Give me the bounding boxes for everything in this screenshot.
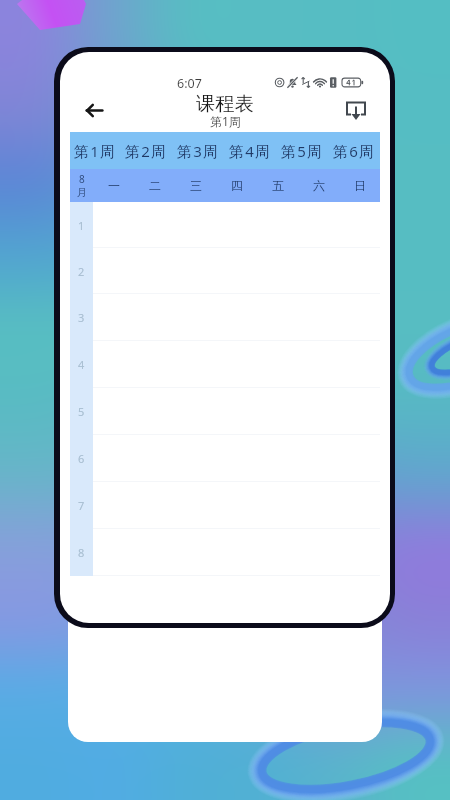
staticText: 第5周	[281, 141, 324, 161]
staticText: 四	[231, 178, 243, 193]
staticText: 8	[79, 172, 85, 186]
button[interactable]: Back	[79, 95, 110, 126]
staticText: 课程表	[196, 92, 255, 116]
staticText: 二	[149, 178, 161, 193]
staticText: 第4周	[229, 141, 272, 161]
staticText: 5	[78, 404, 85, 419]
button[interactable]: 第2周	[121, 132, 172, 169]
button[interactable]: Import schedule	[343, 98, 369, 124]
staticText: 第3周	[177, 141, 220, 161]
button[interactable]: 第4周	[224, 132, 276, 169]
staticText: 五	[272, 178, 284, 193]
staticText: 1	[78, 218, 85, 233]
staticText: 6	[78, 451, 85, 466]
staticText: 一	[108, 178, 120, 193]
staticText: 六	[313, 178, 325, 193]
staticText: 4	[78, 357, 85, 372]
button[interactable]: 第1周	[70, 132, 121, 169]
button[interactable]: 六	[298, 169, 339, 202]
button[interactable]: 第6周	[328, 132, 380, 169]
staticText: 第1周	[210, 113, 241, 129]
staticText: 第6周	[333, 141, 376, 161]
staticText: 第1周	[74, 141, 117, 161]
staticText: 8	[78, 545, 85, 560]
staticText: 6:07	[177, 75, 202, 92]
staticText: 第2周	[125, 141, 168, 161]
staticText: 月	[77, 186, 87, 199]
button[interactable]: 五	[257, 169, 298, 202]
staticText: 日	[354, 178, 366, 193]
staticText: 2	[78, 264, 85, 279]
button[interactable]: 日	[339, 169, 380, 202]
staticText: 三	[190, 178, 202, 193]
button[interactable]: 四	[216, 169, 257, 202]
button[interactable]: 第3周	[172, 132, 224, 169]
button[interactable]: 三	[175, 169, 216, 202]
staticText: 7	[78, 498, 85, 513]
button[interactable]: 二	[134, 169, 175, 202]
button[interactable]: 一	[93, 169, 134, 202]
staticText: 3	[78, 310, 85, 325]
button[interactable]: 第5周	[276, 132, 328, 169]
